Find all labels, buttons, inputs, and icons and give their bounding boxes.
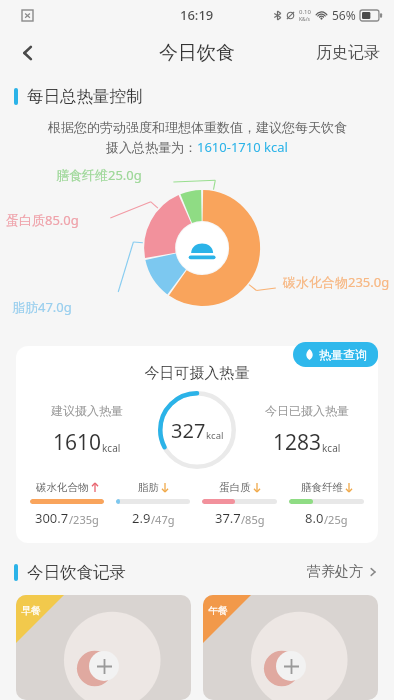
staticText: 脂肪47.0g: [12, 298, 72, 316]
staticText: 56%: [332, 7, 356, 23]
staticText: 16:19: [180, 6, 214, 24]
staticText: K&/s: [299, 16, 311, 23]
staticText: /235g: [69, 512, 99, 527]
staticText: 37.7: [215, 509, 241, 527]
staticText: 建议摄入热量: [51, 403, 123, 418]
button[interactable]: 午餐: [203, 595, 378, 700]
button[interactable]: Add food: [276, 651, 306, 681]
button[interactable]: 历史记录: [302, 35, 394, 71]
staticText: kcal: [102, 441, 121, 455]
staticText: 8.0: [305, 509, 324, 527]
button[interactable]: 早餐: [16, 595, 191, 700]
staticText: 蛋白质85.0g: [6, 211, 79, 229]
staticText: kcal: [322, 441, 341, 455]
staticText: /85g: [241, 512, 265, 527]
staticText: 午餐: [208, 604, 228, 617]
staticText: 1283: [273, 428, 322, 457]
button[interactable]: 热量查询: [293, 342, 378, 367]
staticText: 今日饮食记录: [27, 562, 126, 583]
staticText: 蛋白质: [219, 481, 251, 494]
staticText: 碳水化合物: [36, 481, 89, 494]
staticText: 1610-1710 kcal: [197, 138, 288, 156]
staticText: 今日可摄入热量: [16, 364, 378, 383]
staticText: 营养处方: [307, 563, 363, 581]
staticText: 碳水化合物235.0g: [283, 273, 390, 291]
button[interactable]: Back: [6, 31, 50, 75]
button[interactable]: 营养处方: [303, 557, 382, 587]
staticText: 300.7: [35, 509, 69, 527]
staticText: 膳食纤维25.0g: [56, 166, 142, 184]
staticText: 每日总热量控制: [27, 86, 143, 107]
staticText: 根据您的劳动强度和理想体重数值，建议您每天饮食: [48, 119, 347, 135]
staticText: 脂肪: [138, 481, 159, 494]
staticText: 327: [171, 417, 206, 444]
staticText: 今日已摄入热量: [265, 403, 349, 418]
staticText: 历史记录: [316, 43, 380, 63]
staticText: 2.9: [132, 509, 151, 527]
button[interactable]: Add food: [89, 651, 119, 681]
staticText: 摄入总热量为：: [106, 139, 197, 155]
staticText: 膳食纤维: [301, 481, 343, 494]
staticText: 早餐: [21, 604, 41, 617]
staticText: /47g: [151, 512, 175, 527]
staticText: 1610: [53, 428, 102, 457]
staticText: /25g: [324, 512, 348, 527]
staticText: 今日饮食: [159, 41, 235, 65]
staticText: 热量查询: [319, 347, 367, 362]
staticText: kcal: [206, 429, 224, 442]
staticText: 0.10: [299, 8, 311, 16]
